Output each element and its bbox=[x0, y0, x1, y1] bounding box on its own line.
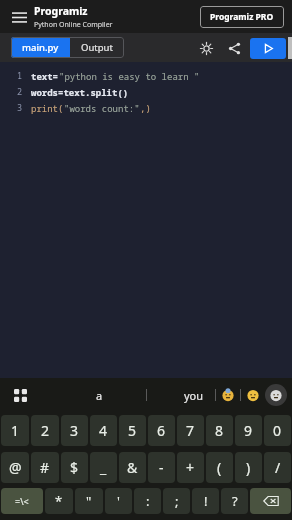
staticText: 6 bbox=[157, 421, 166, 440]
button[interactable]: ; bbox=[163, 488, 190, 514]
button[interactable]: 3 bbox=[61, 415, 88, 446]
button[interactable]: Theme bbox=[194, 36, 218, 60]
staticText: =\< bbox=[15, 495, 29, 507]
staticText: 7 bbox=[186, 421, 195, 440]
staticText: 9 bbox=[244, 421, 253, 440]
button[interactable]: & bbox=[119, 452, 146, 483]
button[interactable]: Output bbox=[70, 37, 124, 58]
button[interactable]: a bbox=[56, 378, 143, 412]
button[interactable]: 6 bbox=[148, 415, 175, 446]
staticText: you bbox=[184, 388, 204, 403]
staticText: ' bbox=[117, 492, 120, 510]
button[interactable]: Run bbox=[250, 38, 286, 59]
staticText: ; bbox=[175, 492, 179, 510]
button[interactable]: main.py bbox=[11, 37, 70, 58]
staticText: " bbox=[86, 492, 92, 510]
staticText: "python is easy to learn " bbox=[59, 70, 200, 82]
button[interactable]: 7 bbox=[177, 415, 204, 446]
staticText: words=text.split() bbox=[31, 86, 129, 98]
staticText: 1 bbox=[16, 70, 22, 82]
staticText: 2 bbox=[16, 86, 22, 98]
button[interactable]: ' bbox=[105, 488, 132, 514]
staticText: # bbox=[40, 458, 50, 477]
staticText: * bbox=[55, 492, 63, 510]
staticText: Programiz PRO bbox=[210, 11, 274, 23]
button[interactable]: @ bbox=[1, 452, 29, 483]
button[interactable]: =\< bbox=[1, 488, 43, 514]
button[interactable]: Menu bbox=[6, 4, 32, 30]
button[interactable]: 4 bbox=[90, 415, 117, 446]
staticText: _ bbox=[100, 458, 107, 477]
staticText: + bbox=[186, 458, 195, 477]
button[interactable]: # bbox=[31, 452, 59, 483]
button[interactable]: $ bbox=[61, 452, 88, 483]
staticText: $ bbox=[70, 458, 79, 477]
staticText: Programiz bbox=[34, 4, 88, 18]
button[interactable]: ( bbox=[206, 452, 233, 483]
staticText: : bbox=[146, 492, 150, 510]
button[interactable]: - bbox=[148, 452, 175, 483]
button[interactable]: ! bbox=[192, 488, 219, 514]
button[interactable]: / bbox=[264, 452, 291, 483]
staticText: 0 bbox=[273, 421, 282, 440]
staticText: ? bbox=[232, 492, 238, 510]
staticText: & bbox=[127, 458, 138, 477]
staticText: 3 bbox=[16, 102, 22, 114]
staticText: Python Online Compiler bbox=[34, 20, 113, 30]
button[interactable]: you bbox=[150, 378, 237, 412]
button[interactable]: 9 bbox=[235, 415, 262, 446]
staticText: 8 bbox=[215, 421, 224, 440]
button[interactable]: + bbox=[177, 452, 204, 483]
staticText: 3 bbox=[70, 421, 79, 440]
button[interactable]: Sticker bbox=[265, 384, 287, 406]
staticText: @ bbox=[9, 458, 22, 477]
staticText: text= bbox=[31, 70, 59, 82]
button[interactable]: ) bbox=[235, 452, 262, 483]
staticText: 4 bbox=[99, 421, 108, 440]
staticText: ( bbox=[217, 458, 222, 477]
button[interactable]: ? bbox=[221, 488, 248, 514]
button[interactable]: Backspace bbox=[250, 488, 291, 514]
button[interactable]: 0 bbox=[264, 415, 291, 446]
staticText: 1 bbox=[11, 421, 20, 440]
staticText: print( bbox=[31, 102, 64, 114]
staticText: / bbox=[275, 458, 281, 477]
staticText: "words count:" bbox=[64, 102, 140, 114]
button[interactable]: : bbox=[134, 488, 161, 514]
staticText: ,) bbox=[140, 102, 151, 114]
button[interactable]: Emoji shocked bbox=[216, 383, 240, 407]
staticText: a bbox=[96, 388, 103, 403]
button[interactable]: * bbox=[45, 488, 73, 514]
button[interactable]: Share bbox=[222, 36, 246, 60]
staticText: 2 bbox=[41, 421, 50, 440]
staticText: ! bbox=[204, 492, 208, 510]
staticText: ) bbox=[246, 458, 251, 477]
button[interactable]: Programiz PRO bbox=[200, 6, 284, 28]
button[interactable]: _ bbox=[90, 452, 117, 483]
button[interactable]: 5 bbox=[119, 415, 146, 446]
button[interactable]: 8 bbox=[206, 415, 233, 446]
button[interactable]: 2 bbox=[31, 415, 59, 446]
button[interactable]: Keyboard options bbox=[8, 383, 32, 407]
staticText: Output bbox=[81, 41, 113, 54]
button[interactable]: " bbox=[75, 488, 103, 514]
staticText: main.py bbox=[22, 41, 59, 54]
button[interactable]: Emoji neutral bbox=[241, 383, 265, 407]
staticText: 5 bbox=[128, 421, 137, 440]
button[interactable]: 1 bbox=[1, 415, 29, 446]
staticText: - bbox=[159, 458, 164, 477]
